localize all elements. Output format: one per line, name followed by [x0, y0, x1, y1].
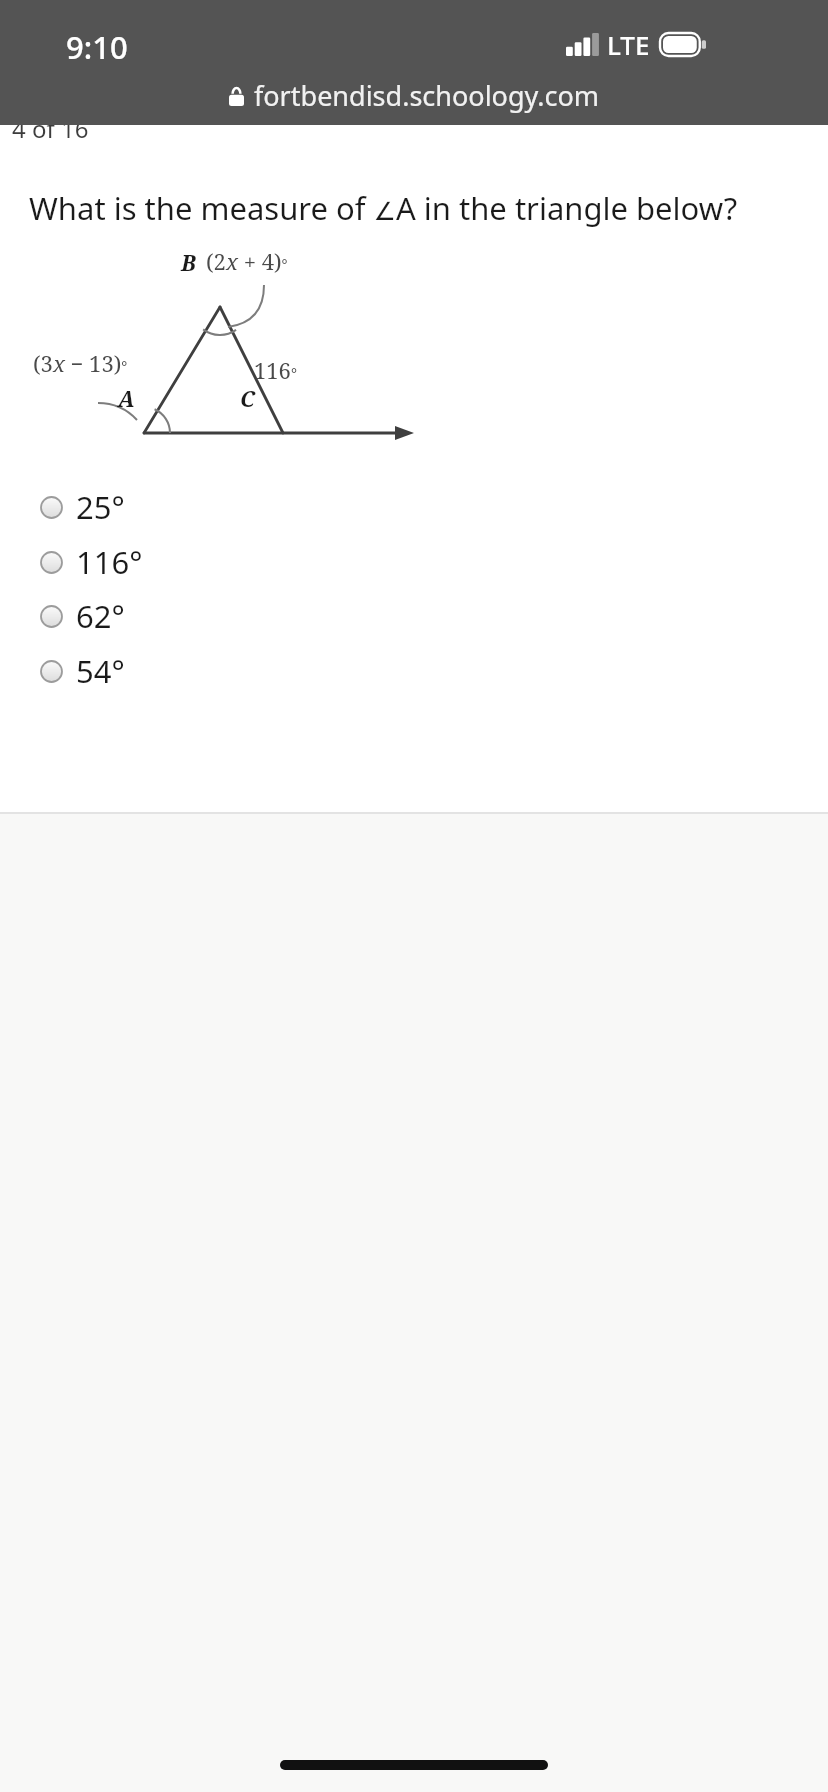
staticText: 54°	[76, 650, 125, 692]
staticText: B	[181, 247, 196, 277]
button[interactable]: 25°	[34, 482, 145, 532]
staticText: (2x + 4)°	[206, 246, 288, 276]
staticText: 62°	[76, 595, 125, 637]
staticText: LTE	[607, 27, 650, 61]
staticText: A	[118, 383, 135, 413]
staticText: (3x − 13)°	[33, 348, 128, 378]
staticText: 9:10	[66, 26, 128, 68]
button[interactable]: 54°	[34, 646, 145, 696]
staticText: 116°	[76, 541, 143, 583]
staticText: 25°	[76, 486, 125, 528]
staticText: C	[240, 383, 255, 413]
button[interactable]: 116°	[34, 537, 163, 587]
staticText: fortbendisd.schoology.com	[254, 77, 600, 114]
staticText: What is the measure of ∠A in the triangl…	[29, 187, 738, 229]
button[interactable]: fortbendisd.schoology.com	[221, 74, 608, 117]
staticText: 4 of 16	[12, 112, 89, 145]
button[interactable]: 62°	[34, 591, 145, 641]
staticText: 116°	[254, 355, 297, 385]
